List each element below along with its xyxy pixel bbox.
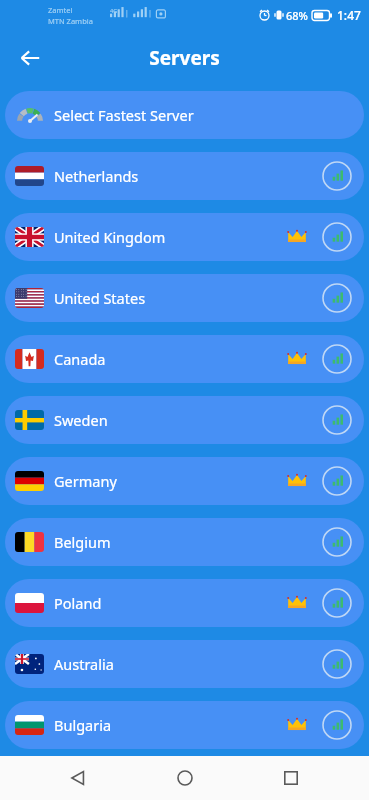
staticText: Servers: [149, 45, 220, 71]
button[interactable]: Netherlands: [5, 152, 364, 200]
staticText: United Kingdom: [54, 227, 286, 247]
staticText: Sweden: [54, 410, 322, 430]
button[interactable]: Belgium: [5, 518, 364, 566]
button[interactable]: United Kingdom: [5, 213, 364, 261]
staticText: Poland: [54, 593, 286, 613]
button[interactable]: Sweden: [5, 396, 364, 444]
staticText: Canada: [54, 349, 286, 369]
staticText: 1:47: [337, 7, 361, 23]
staticText: Belgium: [54, 532, 322, 552]
staticText: Netherlands: [54, 166, 322, 186]
staticText: Select Fastest Server: [54, 105, 194, 125]
staticText: 4G: [110, 7, 118, 14]
button[interactable]: Recent apps: [263, 756, 319, 800]
button[interactable]: Bulgaria: [5, 701, 364, 749]
staticText: MTN Zambia: [48, 16, 93, 26]
staticText: United States: [54, 288, 322, 308]
button[interactable]: Home: [157, 756, 213, 800]
button[interactable]: Back: [10, 38, 50, 78]
button[interactable]: Canada: [5, 335, 364, 383]
staticText: Germany: [54, 471, 286, 491]
staticText: Zamtel: [48, 5, 73, 15]
button[interactable]: Select Fastest Server: [5, 91, 364, 139]
button[interactable]: Germany: [5, 457, 364, 505]
button[interactable]: Australia: [5, 640, 364, 688]
button[interactable]: Poland: [5, 579, 364, 627]
button[interactable]: United States: [5, 274, 364, 322]
button[interactable]: Back: [50, 756, 106, 800]
staticText: Bulgaria: [54, 715, 286, 735]
staticText: 68%: [286, 8, 308, 23]
staticText: Australia: [54, 654, 322, 674]
